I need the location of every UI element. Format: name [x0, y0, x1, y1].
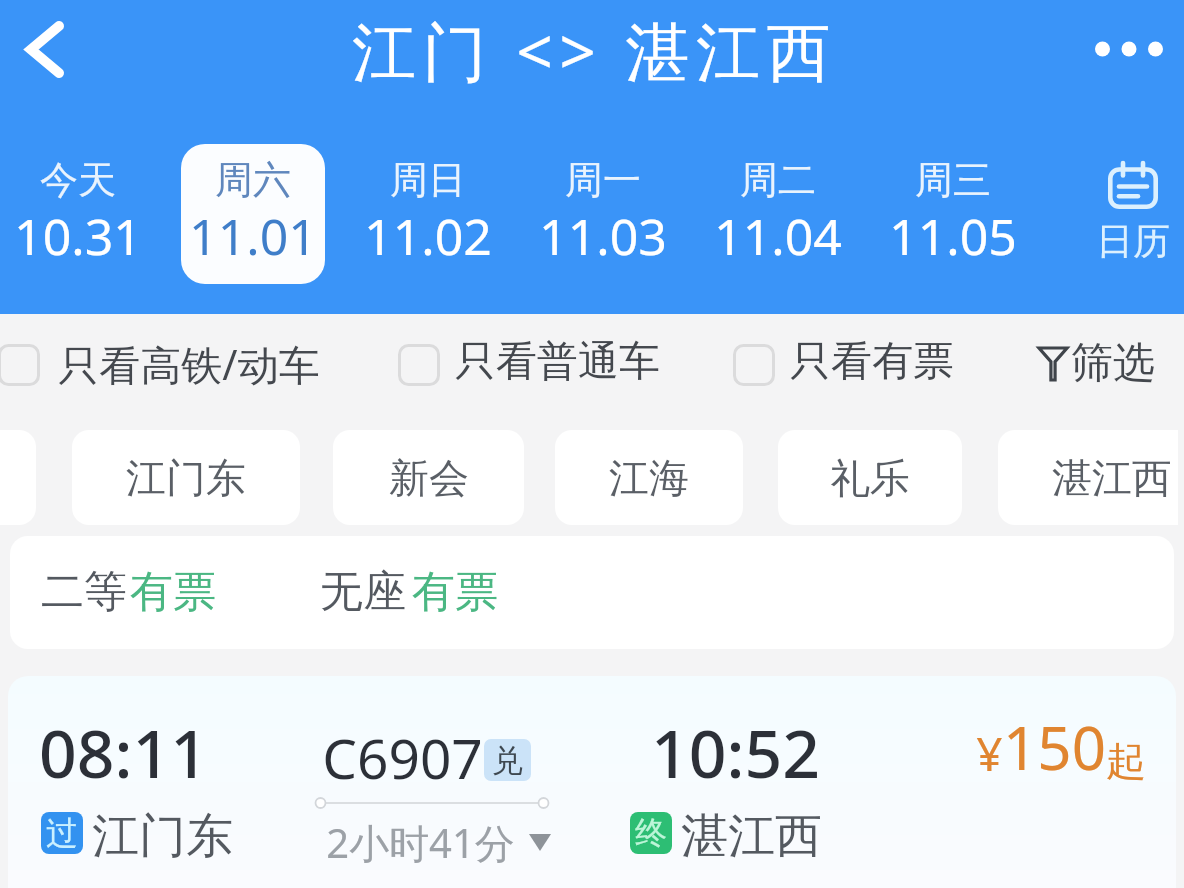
button[interactable]: 只看普通车	[398, 314, 663, 410]
staticText: 周日	[390, 156, 466, 204]
staticText: 2小时41分	[326, 815, 515, 870]
button[interactable]: 周三	[865, 96, 1040, 314]
staticText: 有票	[412, 565, 498, 619]
button[interactable]: 今天	[0, 96, 165, 314]
staticText: 终	[635, 813, 667, 853]
staticText: 湛江西	[1052, 453, 1172, 503]
staticText: 江门东	[126, 453, 246, 503]
staticText: 10:52	[651, 707, 820, 797]
staticText: 新会	[389, 453, 469, 503]
staticText: 江门 <> 湛江西	[352, 7, 837, 94]
staticText: 今天	[40, 156, 116, 204]
staticText: 只看普通车	[455, 336, 660, 388]
staticText: 11.03	[539, 202, 667, 270]
staticText: 11.04	[714, 202, 842, 270]
button[interactable]: 二等	[10, 536, 1174, 649]
button[interactable]	[181, 144, 325, 284]
staticText: 只看高铁/动车	[58, 336, 320, 392]
staticText: 只看有票	[790, 336, 954, 388]
staticText: 周一	[565, 156, 641, 204]
staticText: 礼乐	[830, 453, 910, 503]
staticText: 筛选	[1071, 337, 1155, 390]
button[interactable]: 筛选	[1028, 314, 1178, 410]
staticText: 过	[46, 813, 78, 853]
staticText: 08:11	[39, 707, 208, 797]
button[interactable]: 江门东	[72, 430, 300, 525]
button[interactable]: 周日	[340, 96, 515, 314]
button[interactable]: 湛江西	[998, 430, 1178, 525]
staticText: 湛江西	[681, 807, 822, 866]
button[interactable]: Calendar	[1071, 96, 1184, 314]
staticText: ¥	[976, 722, 1003, 785]
staticText: 江海	[609, 453, 689, 503]
staticText: C6907	[322, 720, 483, 795]
staticText: 11.01	[189, 202, 317, 270]
staticText: 江门东	[92, 807, 233, 866]
staticText: 无座	[320, 565, 406, 619]
staticText: 周三	[915, 156, 991, 204]
staticText: 日历	[1096, 218, 1170, 265]
staticText: 二等	[41, 565, 127, 619]
button[interactable]: 周一	[515, 96, 690, 314]
staticText: 11.05	[889, 202, 1017, 270]
button[interactable]: 礼乐	[778, 430, 962, 525]
button[interactable]: 周六	[165, 96, 340, 314]
button[interactable]: 只看有票	[733, 314, 958, 410]
button[interactable]: 08:11	[8, 676, 1176, 888]
staticText: 兑	[492, 741, 523, 780]
button[interactable]: 周二	[690, 96, 865, 314]
button[interactable]: 新会	[333, 430, 524, 525]
staticText: 10.31	[14, 202, 142, 270]
staticText: 有票	[130, 565, 216, 619]
staticText: 11.02	[364, 202, 492, 270]
staticText: 起	[1106, 736, 1146, 786]
button[interactable]: Back	[0, 3, 92, 95]
button[interactable]: More options	[1084, 4, 1174, 94]
button[interactable]: 江海	[555, 430, 743, 525]
staticText: 周二	[740, 156, 816, 204]
staticText: 150	[1003, 706, 1106, 788]
button[interactable]: 只看高铁/动车	[0, 314, 328, 410]
staticText: 周六	[215, 156, 291, 204]
